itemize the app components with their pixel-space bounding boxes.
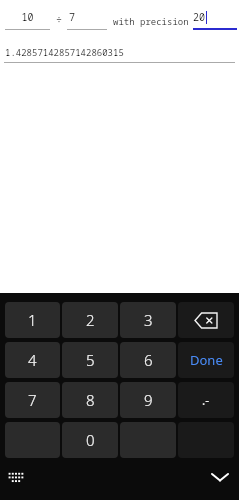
staticText: Done (190, 351, 223, 369)
button[interactable]: Done (178, 342, 234, 378)
button[interactable]: Backspace (178, 302, 234, 338)
button[interactable]: 10 (5, 10, 50, 30)
staticText: 9 (144, 390, 153, 410)
staticText: 0 (86, 430, 95, 450)
staticText: ÷ (56, 13, 62, 27)
staticText: 7 (69, 10, 107, 24)
button[interactable]: 5 (62, 342, 118, 378)
button[interactable]: 7 (67, 10, 107, 30)
button[interactable]: Hide keyboard (207, 464, 233, 490)
staticText: 20 (193, 10, 205, 24)
staticText: 1 (28, 310, 37, 330)
button[interactable]: 2 (62, 302, 118, 338)
staticText: 1.42857142857142860315 (5, 46, 124, 58)
staticText: 3 (144, 310, 153, 330)
staticText: 2 (86, 310, 95, 330)
button[interactable]: 20 (193, 10, 237, 30)
button[interactable]: .- (178, 382, 234, 418)
staticText: 6 (144, 350, 153, 370)
button[interactable]: 7 (5, 382, 60, 418)
button[interactable]: Switch keyboard (4, 465, 28, 489)
button[interactable]: 0 (62, 422, 118, 458)
staticText: 10 (5, 10, 50, 24)
button[interactable]: 9 (120, 382, 176, 418)
staticText: .- (202, 392, 210, 408)
staticText: 8 (86, 390, 95, 410)
button[interactable]: 1 (5, 302, 60, 338)
staticText: 7 (28, 390, 37, 410)
staticText: 5 (86, 350, 95, 370)
button[interactable]: 3 (120, 302, 176, 338)
button[interactable]: 8 (62, 382, 118, 418)
button[interactable]: 4 (5, 342, 60, 378)
button[interactable]: 6 (120, 342, 176, 378)
staticText: 4 (28, 350, 37, 370)
staticText: with precision (113, 15, 189, 27)
